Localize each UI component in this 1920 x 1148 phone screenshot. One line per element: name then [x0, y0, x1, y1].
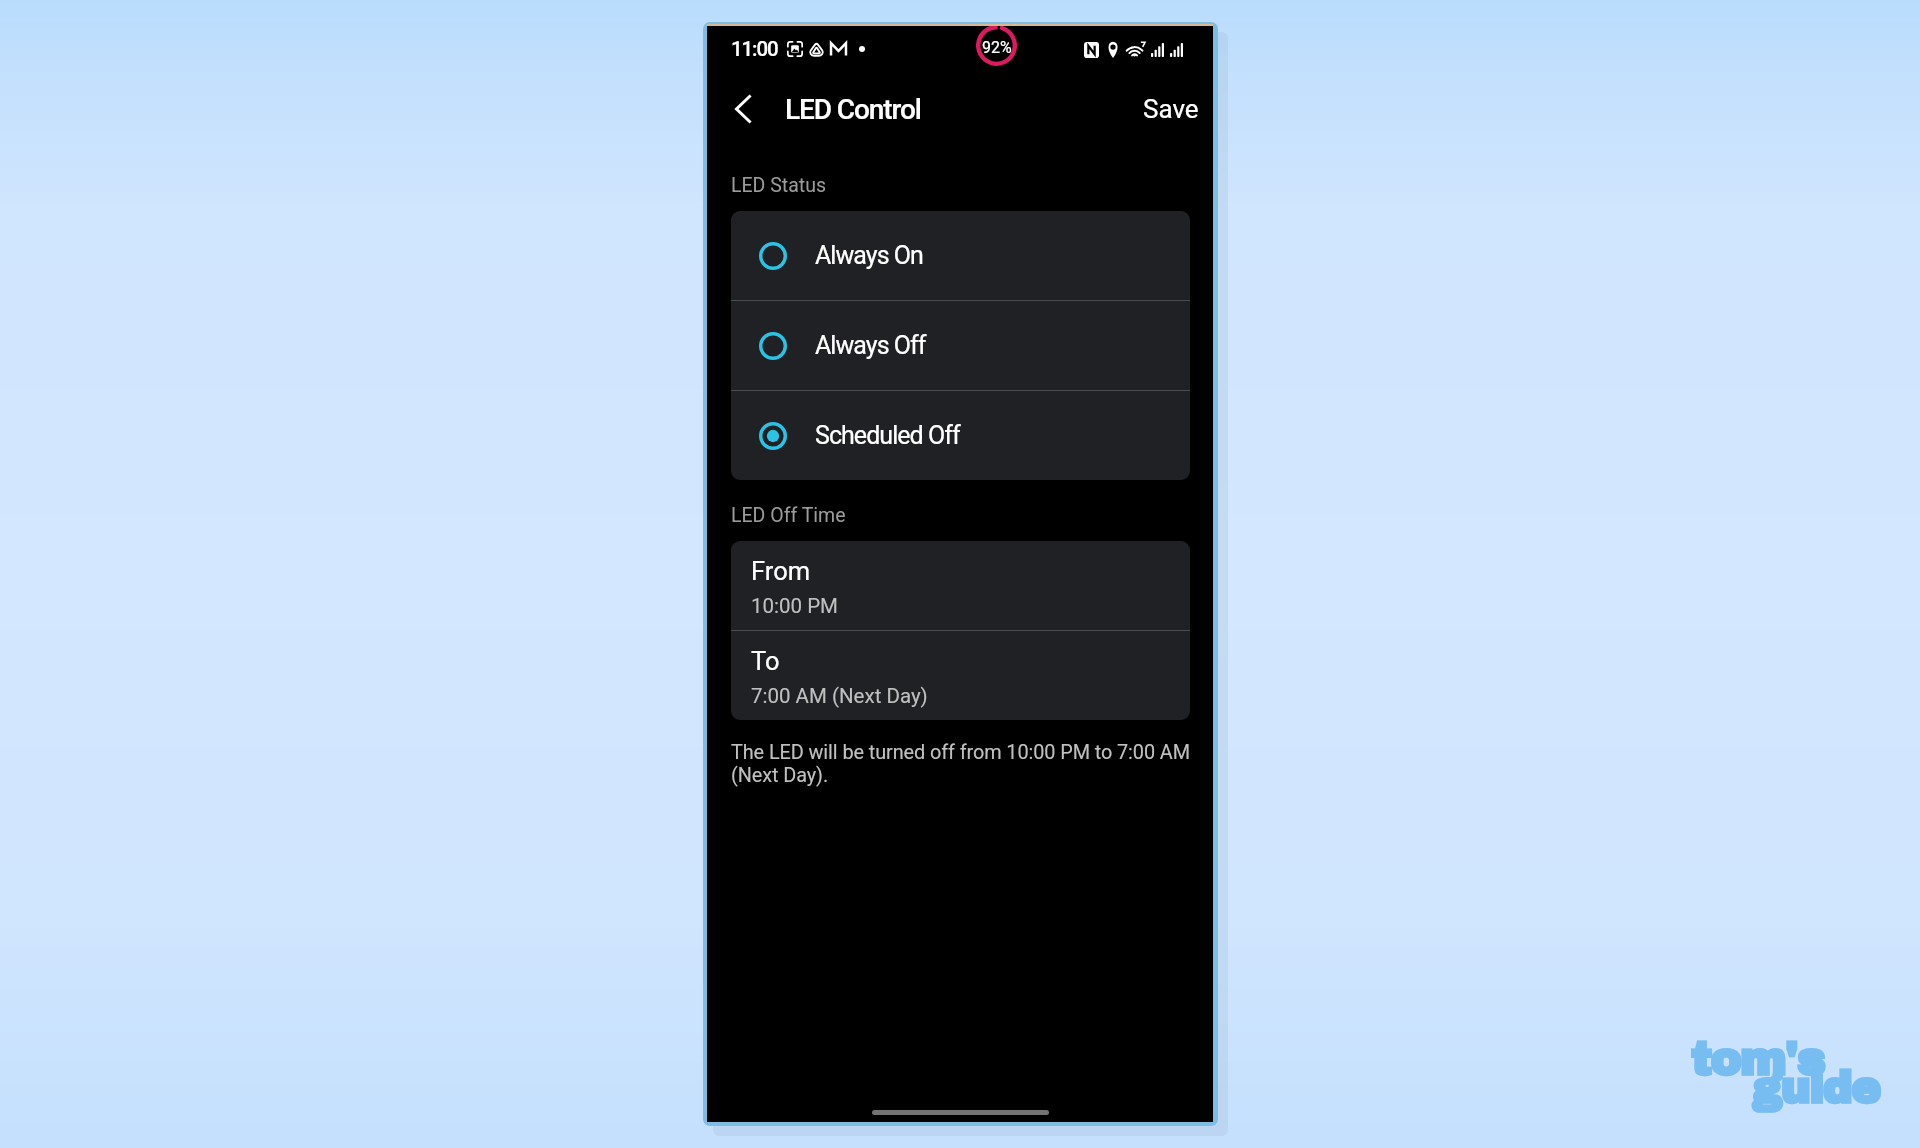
staticText: guide [1752, 1064, 1880, 1112]
staticText: From [751, 556, 811, 586]
staticText: LED Off Time [731, 504, 846, 527]
staticText: Save [1143, 94, 1199, 124]
staticText: Always Off [815, 331, 926, 360]
button[interactable]: Always On [731, 211, 1190, 300]
button[interactable]: From [731, 541, 1190, 630]
staticText: The LED will be turned off from 10:00 PM… [731, 741, 1197, 787]
staticText: 10:00 PM [751, 594, 838, 618]
staticText: 11:00 [731, 37, 778, 61]
staticText: 7:00 AM (Next Day) [751, 684, 928, 708]
button[interactable]: Scheduled Off [731, 391, 1190, 480]
staticText: LED Status [731, 174, 826, 197]
staticText: Scheduled Off [815, 421, 960, 450]
staticText: tom's [1691, 1035, 1824, 1085]
staticText: To [751, 646, 780, 676]
button[interactable]: Always Off [731, 301, 1190, 390]
staticText: 92% [982, 38, 1012, 57]
button[interactable]: Back [721, 87, 765, 131]
button[interactable]: To [731, 631, 1190, 720]
staticText: Always On [815, 241, 923, 270]
button[interactable]: Save [1126, 86, 1213, 132]
staticText: LED Control [785, 93, 921, 126]
